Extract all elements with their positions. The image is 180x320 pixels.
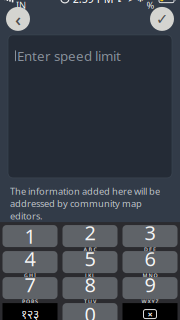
staticText: 2:59 PM bbox=[73, 0, 114, 6]
staticText: The information added here will be addre… bbox=[10, 185, 160, 222]
staticText: 7 bbox=[24, 271, 35, 298]
staticText: P Q R S bbox=[22, 298, 38, 305]
staticText: D E F bbox=[144, 246, 156, 253]
staticText: १२३ bbox=[21, 306, 39, 320]
button[interactable]: 6 bbox=[122, 251, 177, 273]
staticText: ‹ bbox=[15, 6, 21, 31]
staticText: 6 bbox=[144, 245, 155, 272]
button[interactable]: Switch to Devanagari numerals bbox=[2, 303, 57, 320]
staticText: Vodafone IN bbox=[16, 0, 58, 11]
staticText: T U V bbox=[84, 298, 96, 305]
button[interactable]: 1 bbox=[2, 225, 57, 247]
staticText: 9 bbox=[144, 271, 155, 298]
staticText: ➤ bbox=[127, 0, 134, 3]
staticText: 1 bbox=[24, 223, 35, 249]
staticText: M N O bbox=[142, 272, 157, 279]
staticText: 16% bbox=[146, 0, 156, 11]
staticText: ✓ bbox=[156, 11, 168, 27]
button[interactable]: 5 bbox=[62, 251, 117, 273]
staticText: 3 bbox=[144, 219, 155, 246]
button[interactable]: 8 bbox=[62, 277, 117, 299]
button[interactable]: 0 bbox=[62, 303, 117, 320]
staticText: Enter speed limit bbox=[17, 47, 121, 65]
button[interactable]: Delete bbox=[122, 303, 177, 320]
button[interactable]: 7 bbox=[2, 277, 57, 299]
button[interactable]: 9 bbox=[122, 277, 177, 299]
staticText: A B C bbox=[83, 246, 96, 253]
staticText: J K L bbox=[85, 272, 95, 279]
staticText: 8 bbox=[84, 271, 95, 298]
button[interactable]: 3 bbox=[122, 225, 177, 247]
staticText: G H I bbox=[24, 272, 36, 279]
staticText: 4 bbox=[24, 245, 35, 272]
staticText: 2 bbox=[84, 219, 95, 246]
staticText: W X Y Z bbox=[141, 298, 158, 305]
staticText: ✱ bbox=[137, 0, 144, 3]
button[interactable]: 2 bbox=[62, 225, 117, 247]
staticText: 5 bbox=[84, 245, 95, 272]
staticText: ↙ bbox=[117, 0, 125, 4]
button[interactable]: 4 bbox=[2, 251, 57, 273]
staticText: × bbox=[147, 308, 152, 320]
button[interactable]: Save bbox=[147, 4, 177, 34]
staticText: 0 bbox=[84, 301, 95, 320]
button[interactable]: Back bbox=[3, 4, 33, 34]
